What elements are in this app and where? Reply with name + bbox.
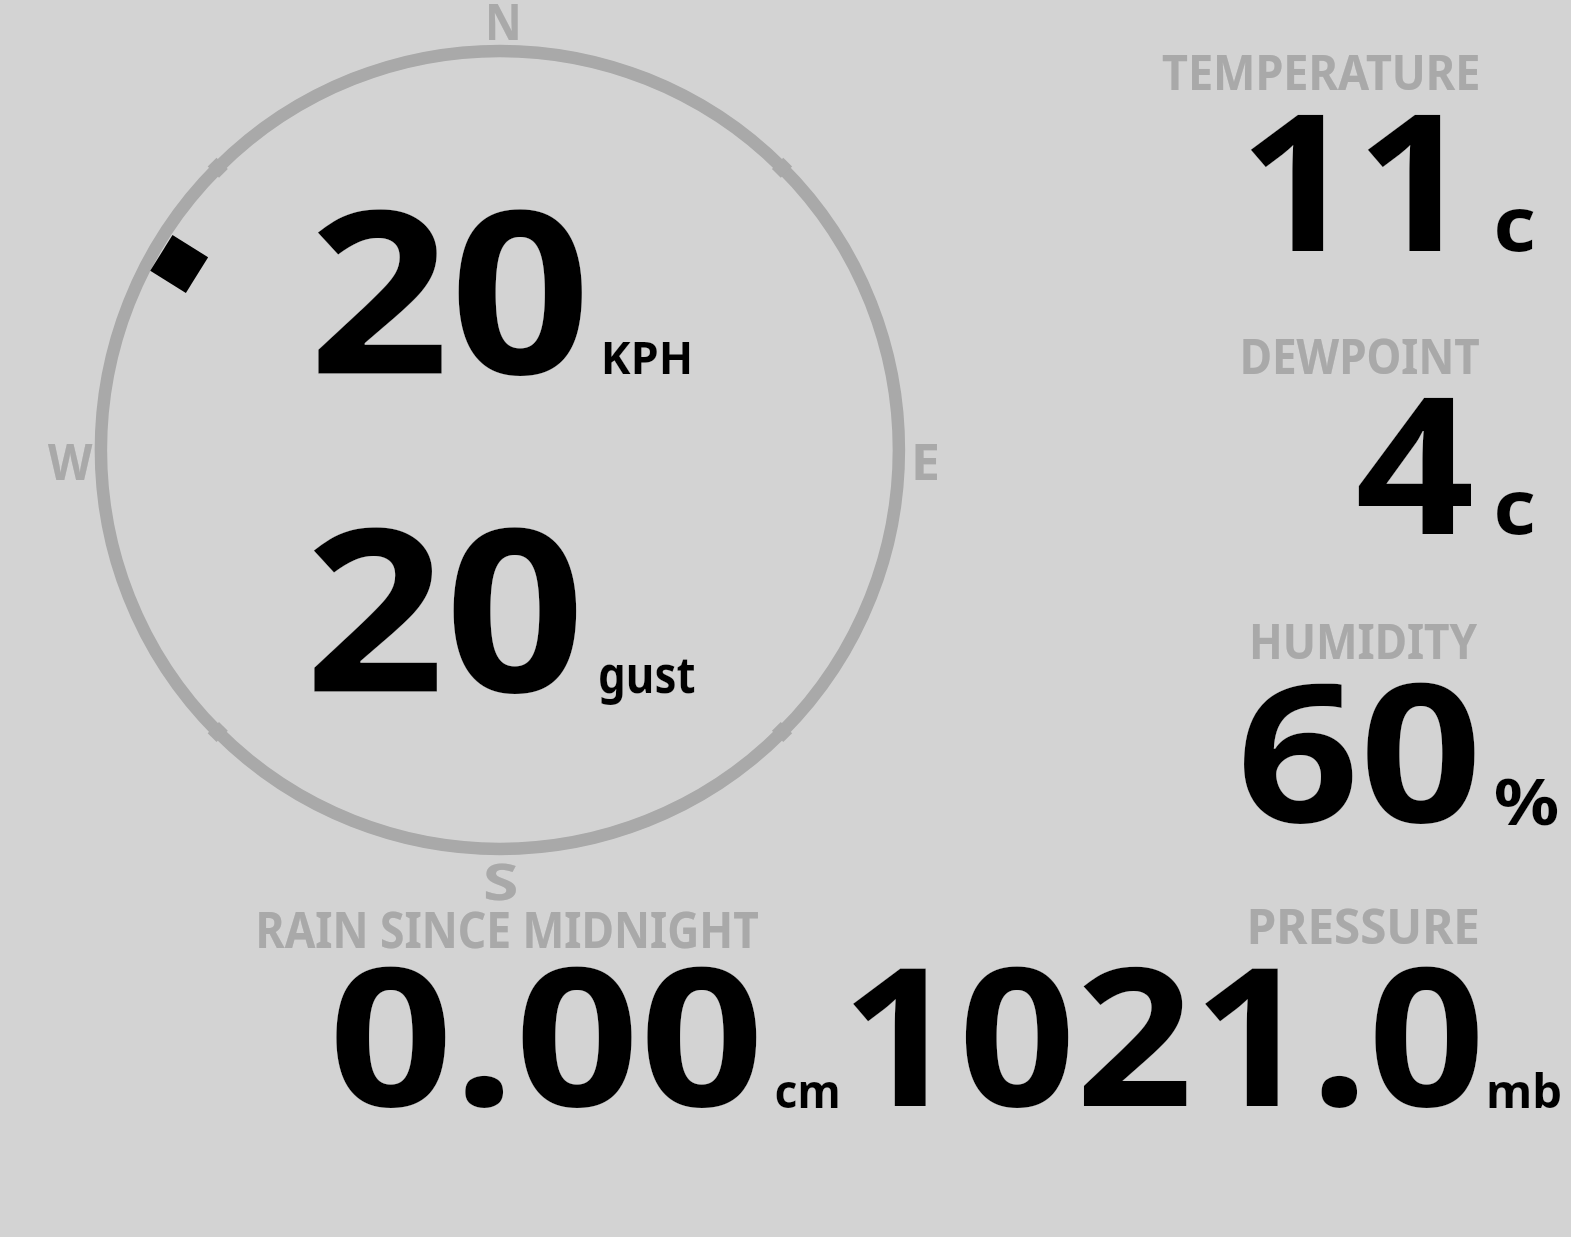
button[interactable]: Pressure 1021.0 mb [860, 900, 1560, 1130]
button[interactable]: Temperature 11 degrees Celsius [1100, 30, 1571, 280]
button[interactable]: Wind speed 20 KPH, gusting 20, direction… [60, 0, 940, 910]
button[interactable]: Humidity 60 percent [1100, 600, 1571, 850]
button[interactable]: Dew point 4 degrees Celsius [1100, 320, 1571, 560]
button[interactable]: Rain since midnight 0.00 cm [240, 900, 850, 1130]
